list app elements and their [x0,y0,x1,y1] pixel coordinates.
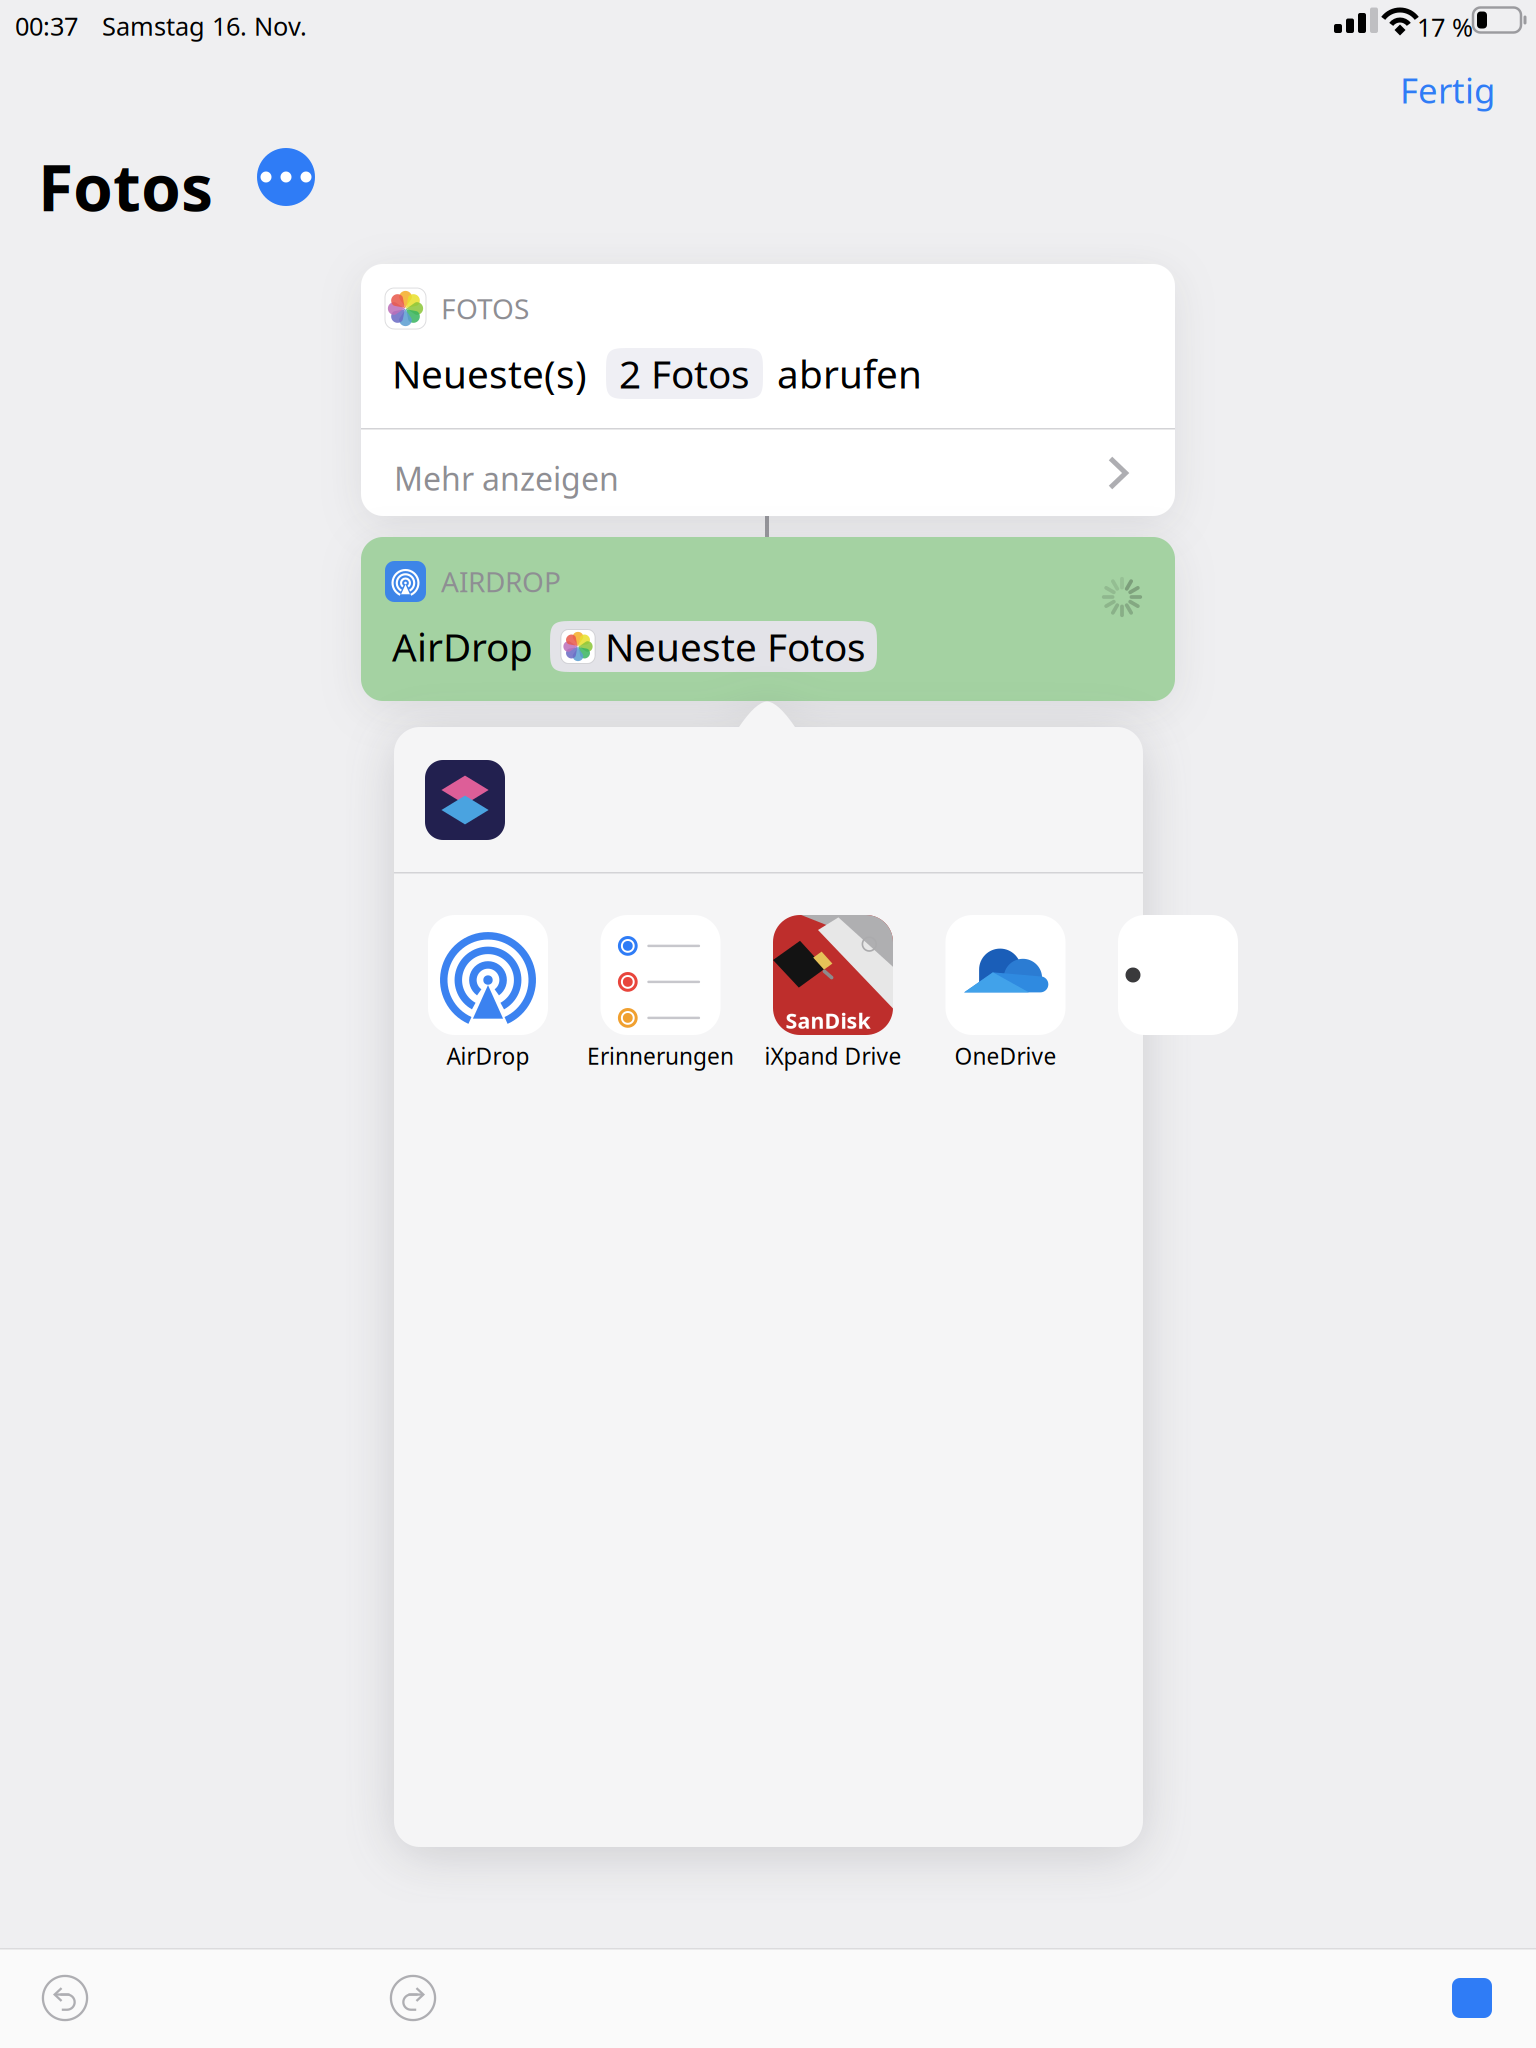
staticText: 00:37 [15,9,78,43]
button[interactable]: OneDrive [895,915,1115,1075]
button[interactable]: Undo [42,1975,88,2021]
staticText: FOTOS [441,290,529,327]
button[interactable]: Mehr anzeigen [361,430,1175,516]
button[interactable]: More options [257,148,315,206]
button[interactable]: Fertig [1374,49,1521,131]
button[interactable]: Run shortcut [1452,1978,1492,2018]
staticText: Fotos [38,144,213,229]
button[interactable]: Erinnerungen [550,915,770,1075]
staticText: AIRDROP [441,563,561,600]
staticText: Fertig [1400,67,1495,113]
staticText: 2 Fotos [619,348,750,399]
staticText: AirDrop [446,1041,529,1071]
staticText: Erinnerungen [587,1041,734,1071]
staticText: abrufen [777,348,922,399]
staticText: SanDisk [786,1006,871,1034]
staticText: AirDrop [392,621,533,672]
staticText: 17 % [1417,10,1473,44]
button[interactable]: Redo [390,1975,436,2021]
button[interactable]: AirDrop [378,915,598,1075]
staticText: Mehr anzeigen [394,457,619,499]
staticText: Neueste(s) [392,348,587,399]
staticText: Samstag 16. Nov. [102,9,307,43]
staticText: Neueste Fotos [605,621,866,672]
staticText: OneDrive [954,1041,1056,1071]
staticText: iXpand Drive [764,1041,901,1071]
button[interactable]: SanDisk [723,915,943,1075]
